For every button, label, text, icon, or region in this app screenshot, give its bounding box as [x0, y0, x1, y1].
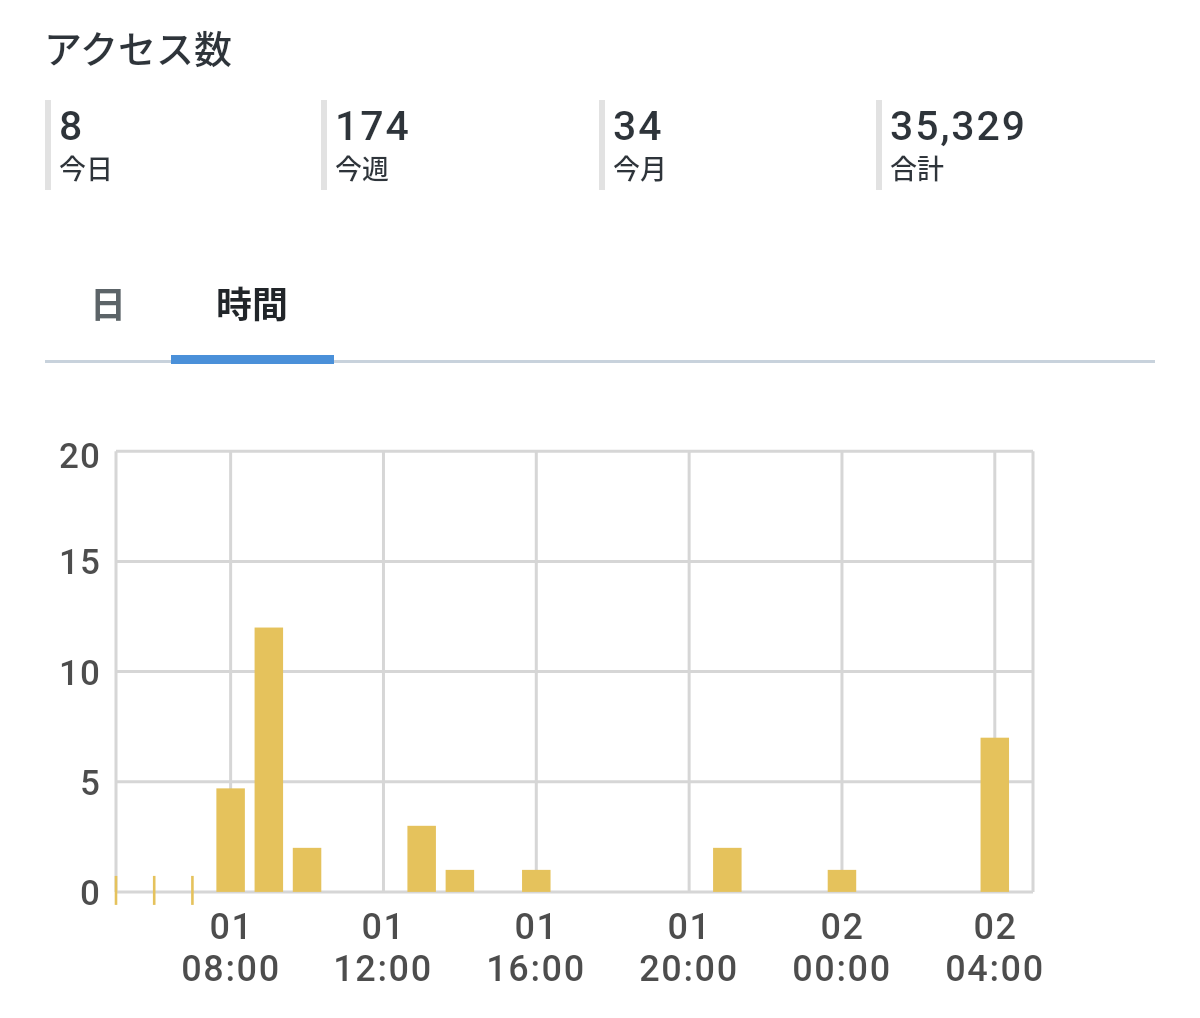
- staticText: 174: [335, 102, 411, 150]
- staticText: 合計: [890, 148, 944, 187]
- staticText: 01: [209, 906, 254, 948]
- staticText: 34: [613, 102, 664, 150]
- staticText: 今日: [59, 148, 113, 187]
- staticText: 02: [820, 906, 865, 948]
- staticText: 8: [59, 102, 85, 150]
- staticText: 20: [59, 436, 102, 477]
- staticText: 12:00: [333, 948, 433, 990]
- staticText: 01: [514, 906, 559, 948]
- staticText: 5: [80, 763, 102, 804]
- staticText: 15: [59, 542, 102, 583]
- staticText: 01: [667, 906, 712, 948]
- staticText: 01: [361, 906, 406, 948]
- staticText: 今週: [335, 148, 389, 187]
- staticText: 04:00: [945, 948, 1045, 990]
- button[interactable]: 時間: [171, 254, 334, 350]
- staticText: 10: [59, 653, 102, 694]
- staticText: アクセス数: [44, 19, 233, 74]
- button[interactable]: 日: [45, 254, 171, 350]
- staticText: 02: [973, 906, 1018, 948]
- staticText: 今月: [613, 148, 667, 187]
- staticText: 0: [80, 873, 102, 914]
- staticText: 日: [90, 276, 127, 328]
- staticText: 08:00: [181, 948, 281, 990]
- staticText: 16:00: [486, 948, 586, 990]
- staticText: 20:00: [639, 948, 739, 990]
- staticText: 00:00: [792, 948, 892, 990]
- staticText: 35,329: [890, 102, 1027, 150]
- staticText: 時間: [216, 276, 289, 328]
